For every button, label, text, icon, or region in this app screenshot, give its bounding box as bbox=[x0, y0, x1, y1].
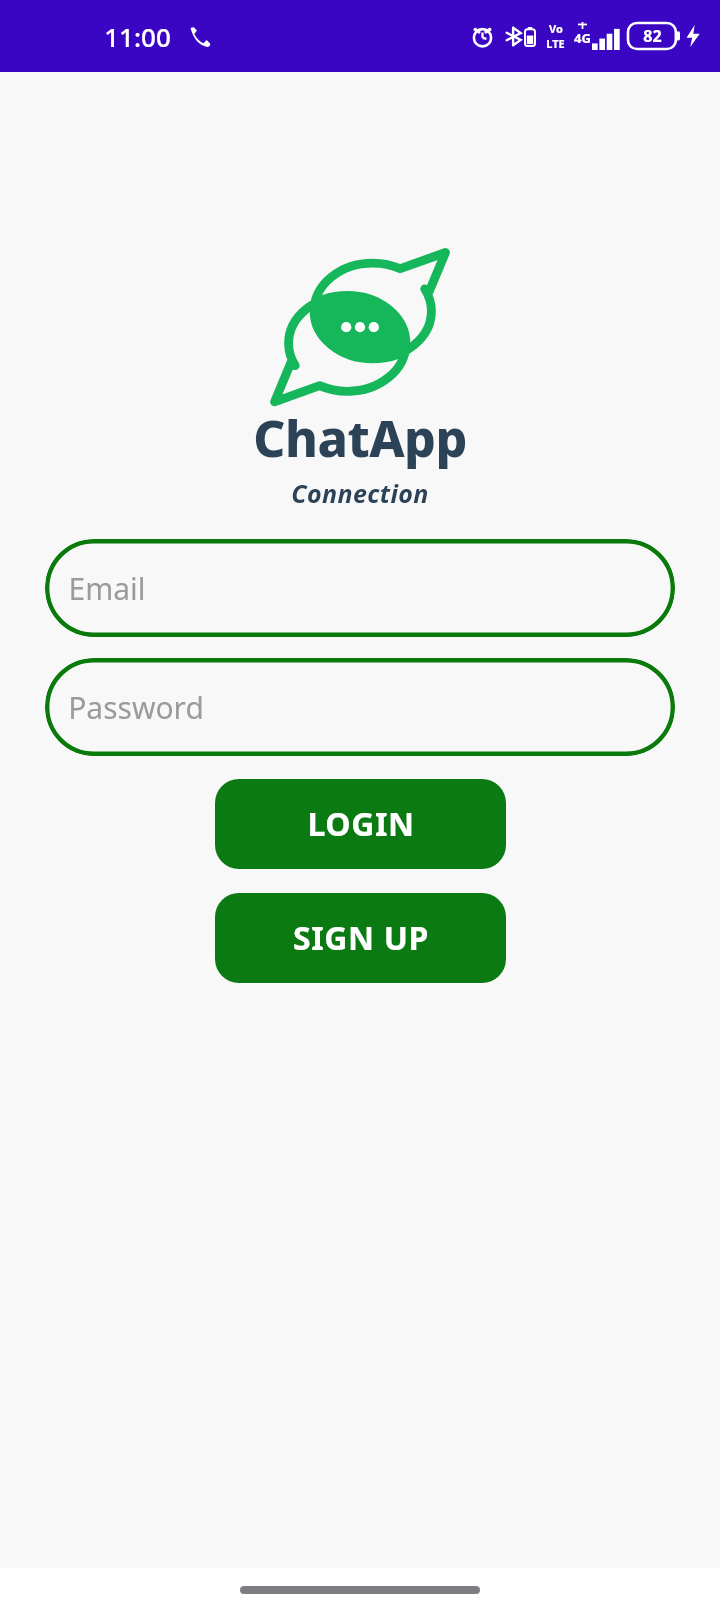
staticText: ChatApp bbox=[253, 404, 467, 472]
button[interactable]: Email bbox=[45, 539, 675, 637]
staticText: Connection bbox=[291, 476, 429, 510]
button[interactable]: SIGN UP bbox=[215, 893, 506, 983]
staticText: 11:00 bbox=[104, 19, 171, 54]
staticText: LOGIN bbox=[307, 802, 415, 846]
button[interactable]: Password bbox=[45, 658, 675, 756]
staticText: Email bbox=[68, 568, 146, 609]
staticText: 82 bbox=[643, 25, 662, 47]
staticText: Password bbox=[68, 687, 204, 728]
staticText: LTE bbox=[546, 36, 565, 51]
button[interactable]: LOGIN bbox=[215, 779, 506, 869]
staticText: SIGN UP bbox=[293, 916, 429, 960]
staticText: 4G bbox=[574, 29, 591, 47]
staticText: Vo bbox=[549, 21, 563, 36]
other: ChatApp logo bbox=[275, 259, 445, 394]
